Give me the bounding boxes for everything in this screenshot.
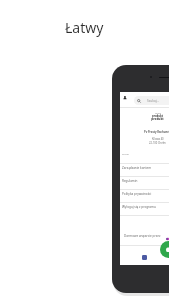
staticText: Regulamin — [122, 179, 138, 183]
staticText: Darmowe wsparcie przez — [124, 234, 161, 238]
staticText: Pv Prosty Rachunek — [144, 130, 169, 134]
staticText: Polityka prywatności — [122, 192, 152, 196]
staticText: Zarządzanie kontem — [122, 166, 152, 170]
staticText: O nas — [122, 152, 129, 155]
staticText: Łatwy — [65, 18, 104, 37]
button[interactable]: Send — [160, 241, 169, 258]
staticText: produkt — [152, 114, 163, 118]
button[interactable]: Partner app — [142, 255, 147, 260]
button[interactable]: Profile — [122, 95, 127, 100]
button[interactable]: Szukaj... — [134, 96, 169, 105]
staticText: produkt — [151, 117, 164, 121]
staticText: 22-100 Chełm — [149, 141, 166, 145]
button[interactable]: Zarządzanie kontem — [120, 163, 169, 176]
staticText: Szukaj... — [147, 99, 160, 103]
staticText: Wyloguj się z programu — [122, 205, 156, 209]
button[interactable]: Polityka prywatności — [120, 189, 169, 202]
staticText: Kilowa 40 — [152, 137, 164, 141]
button[interactable]: Regulamin — [120, 176, 169, 189]
staticText: grupa — [155, 112, 161, 115]
button[interactable]: Wyloguj się z programu — [120, 202, 169, 215]
